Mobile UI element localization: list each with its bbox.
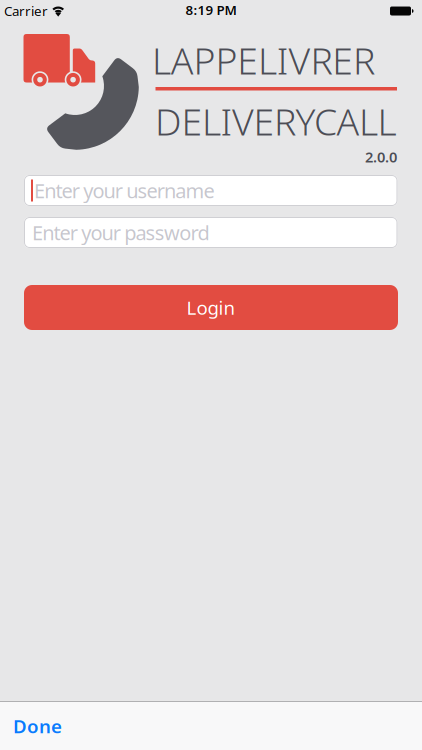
- staticText: 2.0.0: [365, 147, 397, 166]
- button[interactable]: Login: [24, 285, 398, 330]
- staticText: Enter your username: [34, 177, 215, 204]
- staticText: 8:19 PM: [185, 1, 236, 19]
- button[interactable]: Enter your password: [24, 217, 397, 248]
- staticText: DELIVERYCALL: [155, 96, 396, 146]
- button[interactable]: Done: [0, 714, 62, 738]
- staticText: Done: [13, 714, 62, 738]
- staticText: Enter your password: [32, 219, 210, 246]
- button[interactable]: Enter your username: [24, 175, 397, 206]
- staticText: LAPPELIVRER: [152, 35, 375, 85]
- staticText: Login: [186, 295, 235, 320]
- staticText: Carrier: [4, 2, 48, 20]
